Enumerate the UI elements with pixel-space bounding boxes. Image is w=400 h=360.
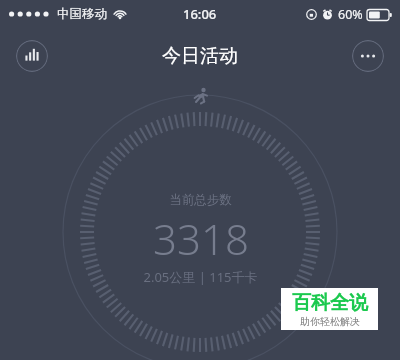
staticText: 3318 — [153, 210, 249, 267]
button[interactable]: Statistics — [16, 40, 48, 72]
button[interactable]: More options — [352, 40, 384, 72]
staticText: 助你轻松解决 — [300, 315, 360, 328]
staticText: 2.05公里 | 115千卡 — [143, 268, 258, 286]
staticText: 60% — [338, 6, 363, 23]
button[interactable]: 今日活动 — [162, 44, 238, 68]
staticText: 当前总步数 — [169, 192, 232, 208]
staticText: 中国移动 — [57, 6, 107, 22]
staticText: 百科全说 — [292, 291, 368, 315]
staticText: 今日活动 — [162, 44, 238, 68]
staticText: 16:06 — [183, 5, 217, 23]
